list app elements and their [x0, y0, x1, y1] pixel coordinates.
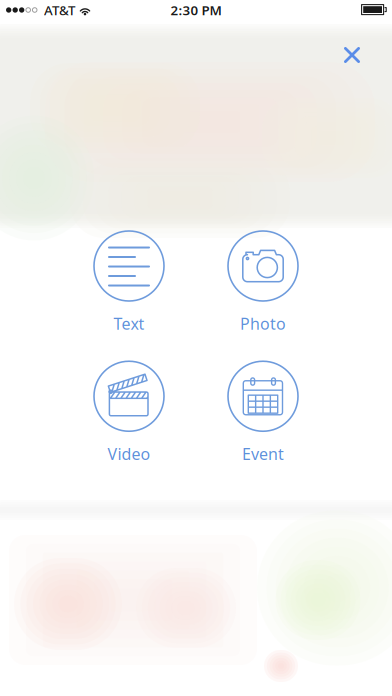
button[interactable]: Event — [201, 361, 325, 464]
button[interactable]: Close — [330, 33, 374, 77]
staticText: Event — [242, 443, 284, 464]
button[interactable]: Video — [67, 361, 191, 464]
staticText: 2:30 PM — [170, 1, 221, 19]
staticText: AT&T — [44, 1, 75, 19]
button[interactable]: Photo — [201, 231, 325, 334]
staticText: Video — [107, 443, 150, 464]
staticText: Text — [113, 313, 144, 334]
staticText: Photo — [240, 313, 286, 334]
button[interactable]: Text — [67, 231, 191, 334]
